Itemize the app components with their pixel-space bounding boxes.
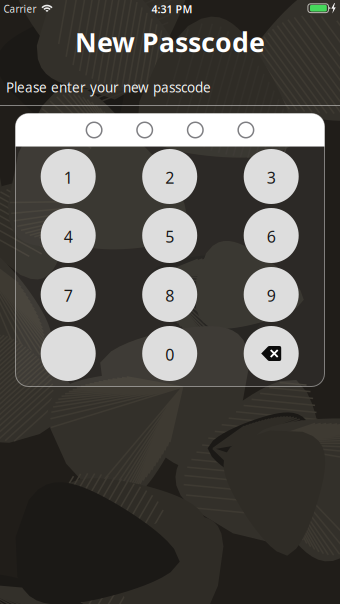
staticText: 6: [267, 226, 276, 247]
button[interactable]: 7: [41, 267, 96, 322]
button[interactable]: 3: [244, 149, 299, 204]
staticText: 3: [267, 167, 276, 188]
button[interactable]: 2: [142, 149, 197, 204]
staticText: 4: [64, 226, 73, 247]
staticText: Please enter your new passcode: [6, 78, 211, 96]
staticText: 9: [267, 285, 276, 306]
staticText: 7: [64, 285, 73, 306]
staticText: 2: [165, 167, 174, 188]
staticText: 5: [165, 226, 174, 247]
button[interactable]: Delete: [244, 326, 299, 381]
button[interactable]: 9: [244, 267, 299, 322]
button[interactable]: 5: [142, 208, 197, 263]
staticText: Carrier: [3, 2, 36, 16]
button[interactable]: 8: [142, 267, 197, 322]
staticText: 1: [64, 167, 73, 188]
staticText: 4:31 PM: [151, 2, 192, 16]
staticText: New Passcode: [75, 24, 265, 60]
button[interactable]: 6: [244, 208, 299, 263]
staticText: 0: [165, 344, 174, 365]
button[interactable]: 4: [41, 208, 96, 263]
staticText: 8: [165, 285, 174, 306]
button[interactable]: 1: [41, 149, 96, 204]
button[interactable]: 0: [142, 326, 197, 381]
